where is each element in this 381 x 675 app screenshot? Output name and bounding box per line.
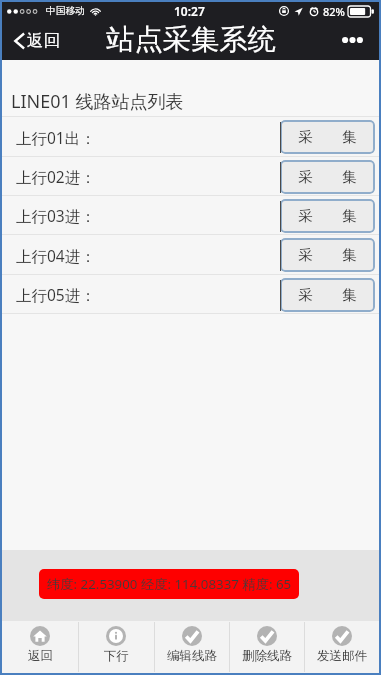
staticText: 返回: [27, 30, 60, 51]
staticText: 删除线路: [242, 648, 292, 664]
staticText: 上行03进：: [16, 205, 96, 226]
button[interactable]: 下行: [78, 621, 154, 673]
staticText: 返回: [28, 648, 53, 664]
staticText: 集: [342, 246, 357, 264]
staticText: 采: [298, 207, 313, 225]
staticText: 下行: [104, 648, 129, 664]
button[interactable]: 发送邮件: [304, 621, 379, 673]
staticText: 上行02进：: [16, 166, 96, 187]
staticText: 中国移动: [46, 5, 85, 17]
button[interactable]: 返回: [2, 23, 70, 58]
button[interactable]: 采: [280, 278, 375, 312]
staticText: 上行04进：: [16, 245, 96, 266]
staticText: 集: [342, 207, 357, 225]
staticText: LINE01 线路站点列表: [11, 89, 184, 114]
staticText: 采: [298, 286, 313, 304]
staticText: 集: [342, 286, 357, 304]
staticText: 上行01出：: [16, 127, 96, 148]
staticText: 站点采集系统: [106, 22, 276, 58]
staticText: 采: [298, 246, 313, 264]
button[interactable]: 删除线路: [229, 621, 304, 673]
staticText: 集: [342, 168, 357, 186]
button[interactable]: 采: [280, 160, 375, 194]
staticText: 集: [342, 128, 357, 146]
button[interactable]: 返回: [2, 621, 78, 673]
button[interactable]: 编辑线路: [154, 621, 229, 673]
button[interactable]: More options: [330, 25, 379, 55]
staticText: 采: [298, 168, 313, 186]
staticText: 编辑线路: [167, 648, 217, 664]
staticText: 10:27: [174, 3, 205, 19]
staticText: 82%: [323, 4, 345, 19]
button[interactable]: 采: [280, 238, 375, 272]
staticText: 纬度: 22.53900 经度: 114.08337 精度: 65: [47, 575, 292, 593]
staticText: 上行05进：: [16, 284, 96, 305]
staticText: 发送邮件: [317, 648, 367, 664]
staticText: 采: [298, 128, 313, 146]
button[interactable]: 采: [280, 199, 375, 233]
button[interactable]: 采: [280, 120, 375, 154]
